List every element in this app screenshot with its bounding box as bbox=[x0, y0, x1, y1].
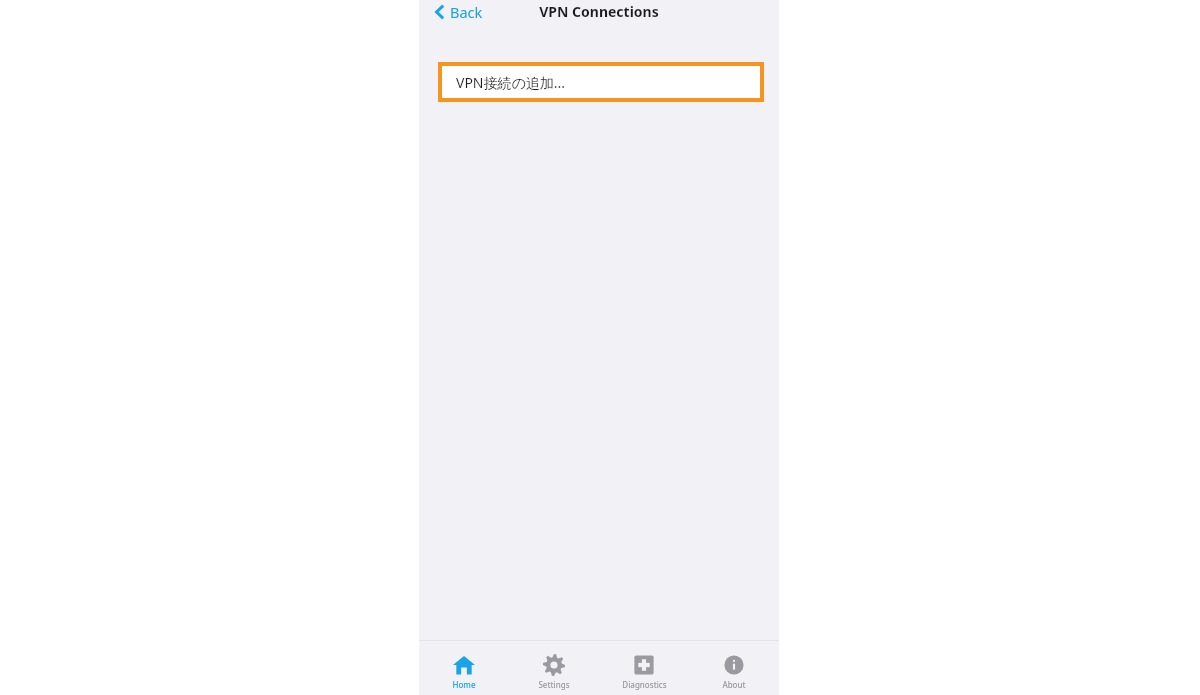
staticText: Back bbox=[450, 2, 483, 22]
button[interactable]: Back bbox=[431, 0, 487, 26]
staticText: About bbox=[722, 679, 746, 690]
button[interactable]: Diagnostics bbox=[599, 641, 689, 695]
button[interactable]: VPN接続の追加... bbox=[442, 66, 760, 98]
staticText: VPN接続の追加... bbox=[456, 73, 566, 92]
staticText: Home bbox=[452, 679, 476, 690]
staticText: Settings bbox=[538, 679, 570, 690]
staticText: VPN Connections bbox=[539, 2, 659, 21]
button[interactable]: Home bbox=[419, 641, 509, 695]
staticText: Diagnostics bbox=[622, 679, 667, 690]
button[interactable]: Settings bbox=[509, 641, 599, 695]
button[interactable]: About bbox=[689, 641, 779, 695]
